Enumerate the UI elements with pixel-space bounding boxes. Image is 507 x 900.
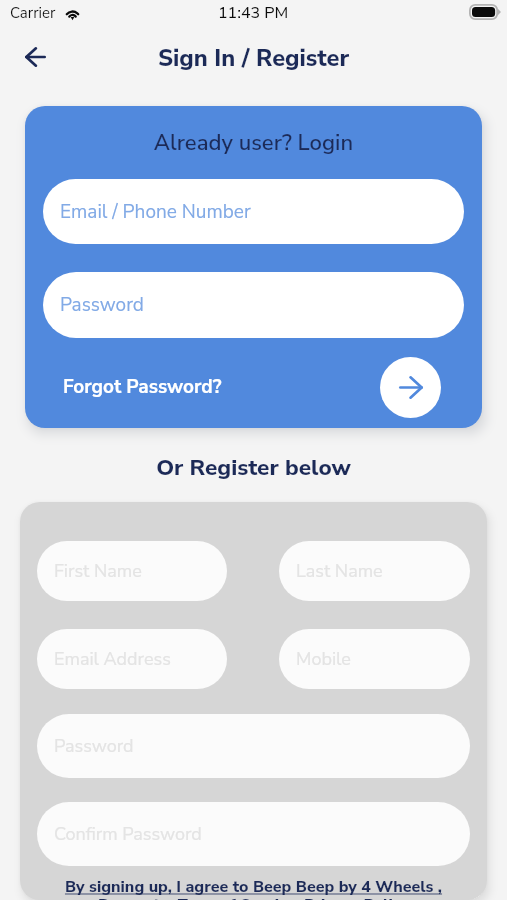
- staticText: Password: [60, 292, 144, 318]
- button[interactable]: Email Address: [37, 629, 227, 689]
- staticText: Password: [54, 734, 134, 759]
- staticText: First Name: [54, 559, 142, 584]
- staticText: Email Address: [54, 647, 171, 672]
- staticText: Mobile: [296, 647, 351, 672]
- button[interactable]: Email / Phone Number: [43, 179, 464, 244]
- button[interactable]: Password: [37, 714, 470, 778]
- staticText: Already user? Login: [43, 128, 464, 158]
- button[interactable]: Mobile: [279, 629, 470, 689]
- button[interactable]: Confirm Password: [37, 802, 470, 866]
- button[interactable]: Back: [13, 35, 57, 79]
- staticText: 11:43 PM: [218, 2, 289, 24]
- button[interactable]: Last Name: [279, 541, 470, 601]
- button[interactable]: By signing up, I agree to Beep Beep by 4…: [62, 876, 445, 900]
- button[interactable]: Submit: [380, 357, 441, 418]
- staticText: Confirm Password: [54, 822, 202, 847]
- staticText: Forgot Password?: [63, 374, 222, 400]
- staticText: By signing up, I agree to Beep Beep by 4…: [62, 876, 445, 900]
- staticText: Sign In / Register: [158, 42, 350, 74]
- staticText: Last Name: [296, 559, 383, 584]
- button[interactable]: Password: [43, 272, 464, 338]
- staticText: Or Register below: [0, 452, 507, 483]
- button[interactable]: First Name: [37, 541, 227, 601]
- staticText: Email / Phone Number: [60, 199, 251, 225]
- button[interactable]: Forgot Password?: [43, 368, 228, 406]
- staticText: Carrier: [10, 3, 56, 23]
